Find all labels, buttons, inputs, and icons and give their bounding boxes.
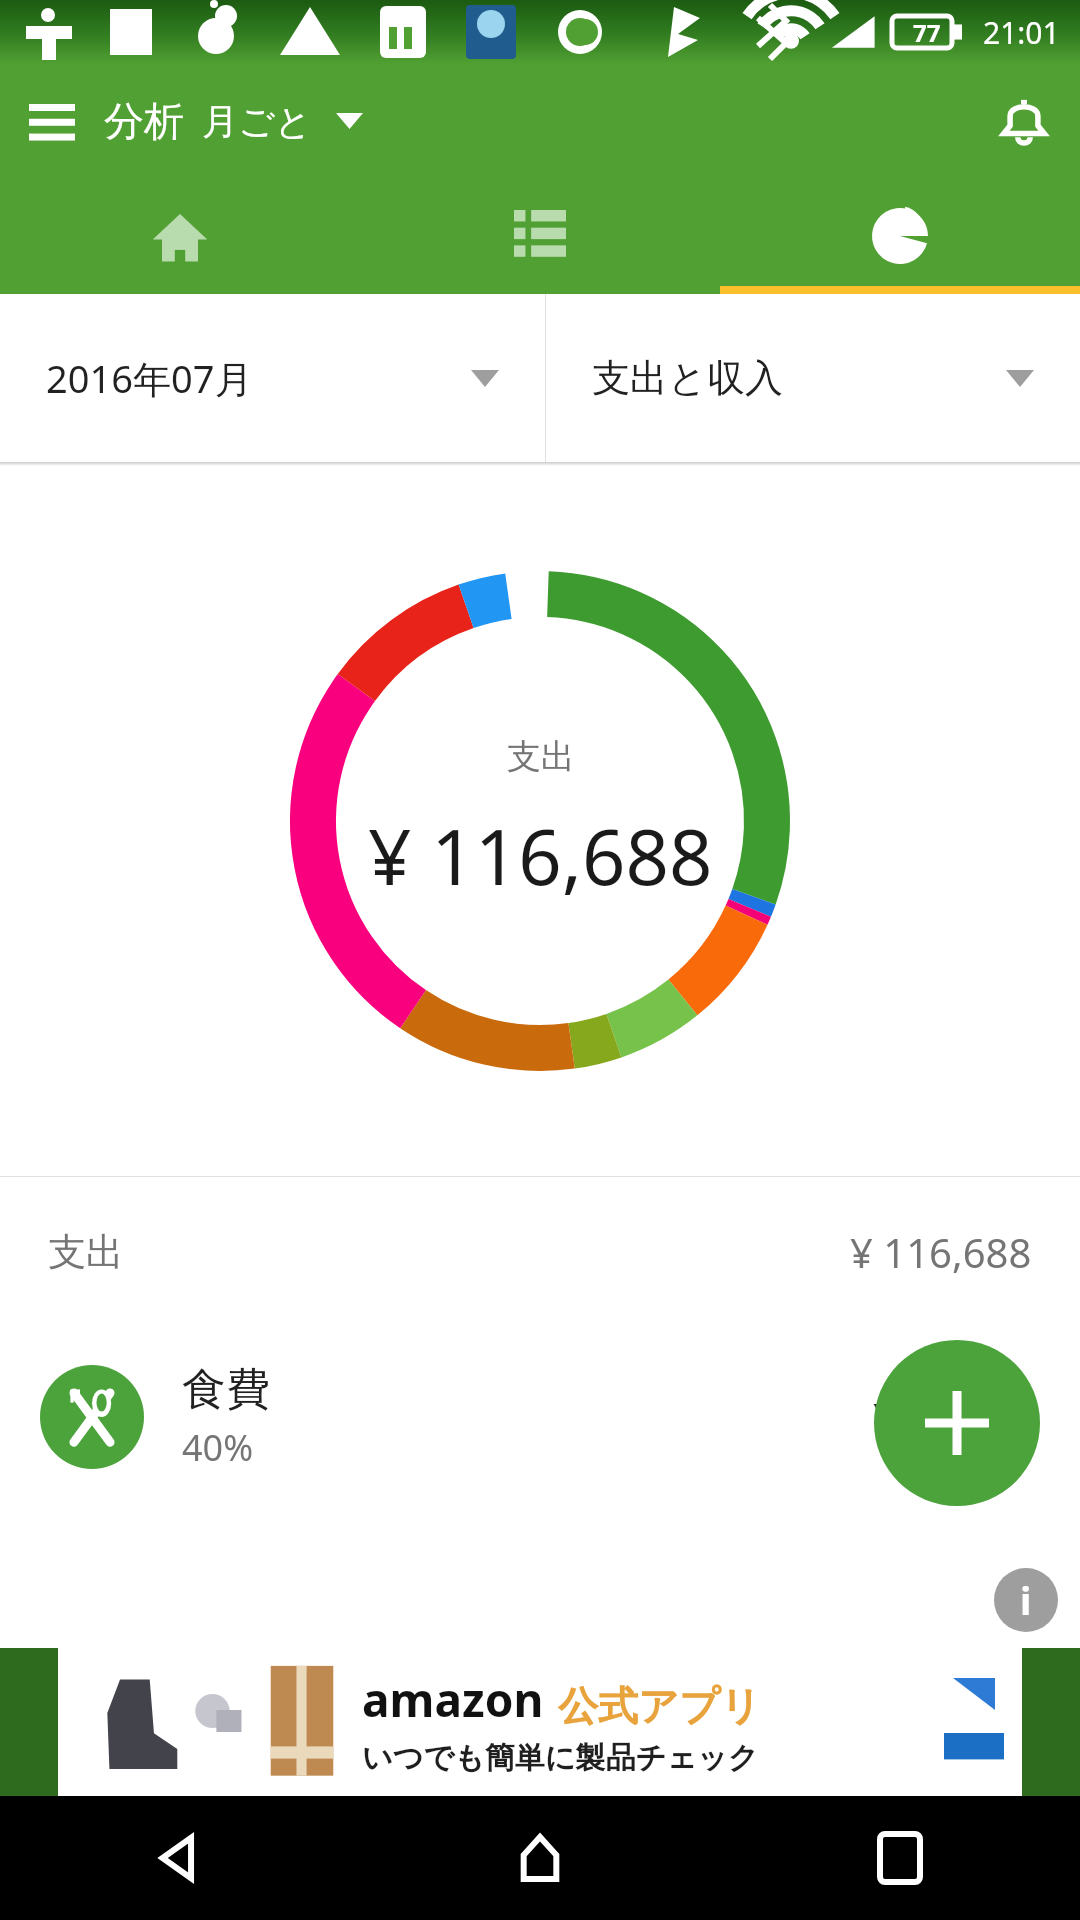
staticText: 21:01 — [983, 12, 1060, 53]
staticText: 月ごと — [202, 99, 312, 144]
button[interactable]: Analysis — [720, 178, 1080, 294]
button[interactable]: Home — [360, 1796, 720, 1920]
staticText: 2016年07月 — [46, 352, 253, 404]
button[interactable]: 分析 — [104, 96, 363, 146]
staticText: ¥ 116,688 — [850, 1225, 1032, 1279]
staticText: 分析 — [104, 96, 184, 146]
staticText: 77 — [913, 16, 941, 49]
staticText: いつでも簡単に製品チェック — [362, 1739, 759, 1777]
staticText: 公式アプリ — [558, 1681, 761, 1731]
button[interactable]: List — [360, 178, 720, 294]
button[interactable]: Notifications — [968, 65, 1080, 177]
staticText: ¥ 46,714 — [873, 1389, 1040, 1446]
button[interactable]: 支出 — [0, 1177, 1080, 1327]
staticText: amazon — [362, 1668, 544, 1731]
staticText: 支出と収入 — [592, 354, 783, 402]
staticText: 40% — [182, 1423, 254, 1472]
button[interactable]: Menu — [0, 69, 104, 173]
button[interactable]: Info — [994, 1568, 1058, 1632]
staticText: 食費 — [182, 1362, 270, 1417]
button[interactable]: Add — [874, 1340, 1040, 1506]
button[interactable]: 2016年07月 — [0, 294, 545, 462]
button[interactable]: Back — [0, 1796, 360, 1920]
button[interactable]: 支出と収入 — [546, 294, 1080, 462]
staticText: 支出 — [48, 1228, 124, 1276]
button[interactable]: Home — [0, 178, 360, 294]
staticText: i — [1020, 1574, 1032, 1626]
staticText: 支出 — [507, 735, 575, 778]
button[interactable]: Recents — [720, 1796, 1080, 1920]
button[interactable]: 食費 — [0, 1327, 1080, 1507]
staticText: ¥ 116,688 — [368, 804, 713, 908]
button[interactable]: Amazon ad — [58, 1648, 1022, 1796]
